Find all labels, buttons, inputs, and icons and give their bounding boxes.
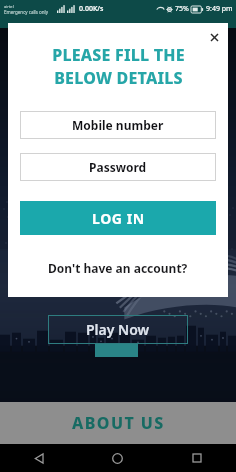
staticText: 75% — [175, 4, 189, 14]
button[interactable]: Play Now — [48, 315, 188, 344]
staticText: LOG IN — [92, 209, 145, 228]
staticText: airtel — [4, 4, 14, 9]
button[interactable]: Mobile number — [20, 111, 216, 139]
button[interactable]: Don't have an account? — [8, 257, 228, 279]
staticText: PLEASE FILL THE — [52, 44, 185, 66]
staticText: ABOUT US — [72, 412, 165, 434]
button[interactable]: Back — [0, 444, 78, 472]
staticText: Don't have an account? — [48, 260, 188, 276]
button[interactable]: Close — [206, 29, 222, 45]
staticText: BELOW DETAILS — [54, 67, 183, 89]
staticText: Emergency calls only — [4, 9, 49, 15]
staticText: Play Now — [86, 320, 150, 339]
staticText: 9:49 pm — [206, 4, 233, 14]
staticText: Mobile number — [72, 117, 164, 133]
button[interactable]: Recent apps — [157, 444, 236, 472]
button[interactable]: Home — [78, 444, 157, 472]
button[interactable]: ABOUT US — [0, 402, 236, 444]
staticText: Password — [89, 159, 147, 175]
staticText: 0.00K/s — [79, 4, 104, 14]
button[interactable]: Password — [20, 153, 216, 181]
button[interactable]: LOG IN — [20, 201, 216, 235]
